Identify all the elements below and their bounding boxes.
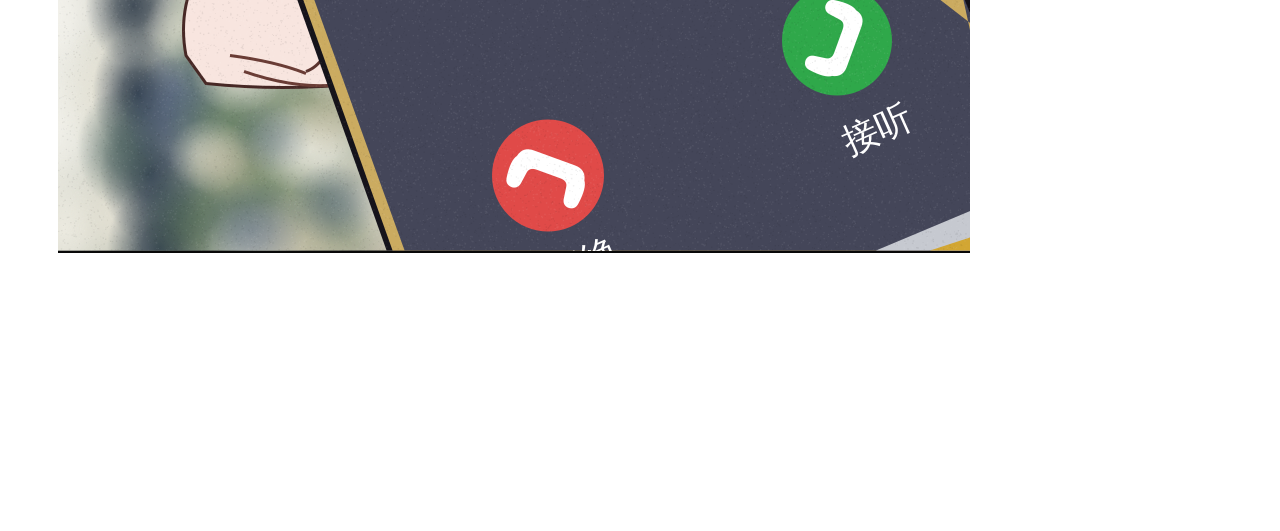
button[interactable]: 拒绝 [492,119,604,231]
button[interactable]: 接听 [782,0,892,95]
staticText: 拒绝 [546,241,618,286]
staticText: 接听 [841,107,913,152]
